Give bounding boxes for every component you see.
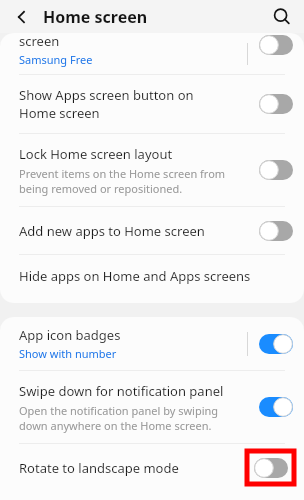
button[interactable]: Add new apps to Home screen toggle (259, 221, 293, 241)
staticText: screen (19, 33, 60, 50)
staticText: Open the notification panel by swiping d… (19, 403, 219, 433)
staticText: Show Apps screen button on Home screen (19, 86, 253, 122)
button[interactable]: Samsung Free toggle (259, 35, 293, 55)
staticText: Swipe down for notification panel (19, 382, 224, 400)
staticText: Rotate to landscape mode (19, 459, 247, 477)
button[interactable]: Show Apps screen button on Home screen (0, 75, 304, 133)
button[interactable]: Back (10, 5, 34, 29)
staticText: App icon badges (19, 326, 121, 344)
staticText: Home screen (43, 6, 148, 28)
button[interactable]: screen (0, 33, 304, 74)
staticText: Hide apps on Home and Apps screens (19, 267, 251, 285)
button[interactable]: Lock Home screen layout (0, 134, 304, 206)
button[interactable]: Rotate to landscape mode toggle (247, 451, 294, 484)
staticText: Samsung Free (19, 52, 93, 67)
button[interactable]: Hide apps on Home and Apps screens (0, 255, 304, 297)
button[interactable]: Show Apps screen button on Home screen t… (259, 94, 293, 114)
button[interactable]: Rotate to landscape mode (0, 444, 304, 491)
button[interactable]: App icon badges toggle (259, 334, 293, 354)
staticText: Add new apps to Home screen (19, 222, 253, 240)
button[interactable]: Swipe down for notification panel (0, 371, 304, 443)
button[interactable]: Add new apps to Home screen (0, 207, 304, 254)
button[interactable]: Search (270, 5, 294, 29)
button[interactable]: App icon badges (0, 317, 304, 370)
button[interactable]: Lock Home screen layout toggle (259, 160, 293, 180)
staticText: Show with number (19, 346, 117, 361)
button[interactable]: Swipe down for notification panel toggle (259, 397, 293, 417)
staticText: Lock Home screen layout (19, 145, 173, 163)
staticText: Prevent items on the Home screen from be… (19, 166, 226, 196)
